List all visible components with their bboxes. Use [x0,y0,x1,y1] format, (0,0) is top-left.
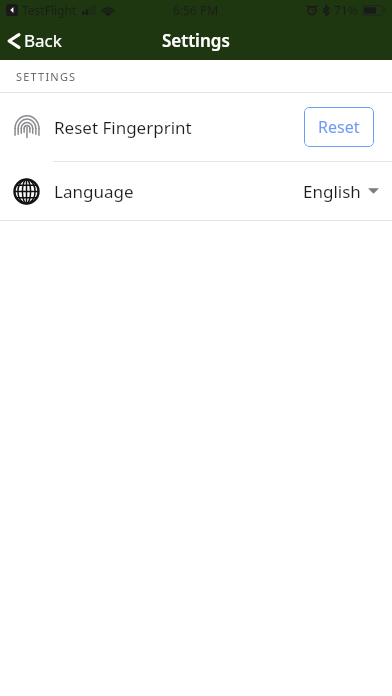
staticText: 6:56 PM [173,2,219,18]
staticText: SETTINGS [16,69,77,84]
staticText: TestFlight [22,2,77,18]
button[interactable]: Language [0,162,392,220]
staticText: Reset [318,116,360,138]
staticText: 71% [334,2,358,18]
staticText: Settings [162,29,230,52]
staticText: Back [24,29,62,52]
button[interactable]: Reset [304,107,374,147]
staticText: Reset Fingerprint [54,116,192,139]
staticText: English [303,180,361,203]
staticText: Language [54,180,134,203]
button[interactable]: Back [0,25,74,56]
